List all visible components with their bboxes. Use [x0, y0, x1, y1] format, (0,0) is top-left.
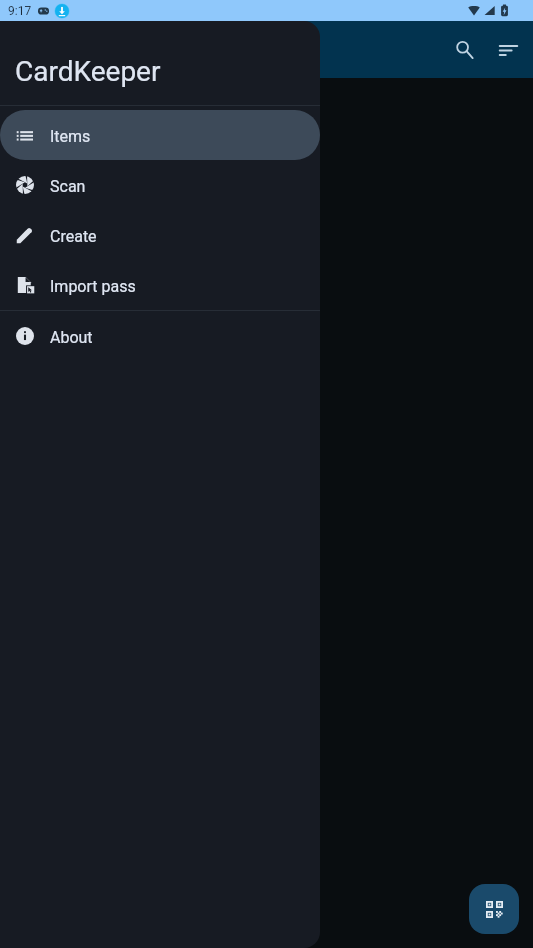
staticText: 9:17	[8, 4, 32, 18]
staticText: CardKeeper	[15, 55, 161, 88]
button[interactable]: Scan QR code	[469, 884, 519, 934]
button[interactable]: Import pass	[0, 260, 320, 310]
staticText: Items	[50, 127, 91, 146]
staticText: Scan	[50, 177, 86, 196]
staticText: About	[50, 328, 93, 347]
staticText: Import pass	[50, 277, 136, 296]
button[interactable]: Sort	[496, 37, 521, 62]
button[interactable]: Scan	[0, 160, 320, 210]
button[interactable]: Items	[0, 110, 320, 160]
button[interactable]: Create	[0, 210, 320, 260]
staticText: Create	[50, 227, 97, 246]
button[interactable]: Search	[452, 37, 477, 62]
button[interactable]: About	[0, 311, 320, 361]
